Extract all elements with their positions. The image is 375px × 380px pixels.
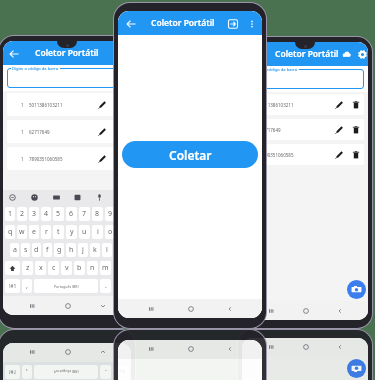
button[interactable]: m bbox=[100, 261, 111, 275]
button[interactable]: n bbox=[87, 261, 98, 275]
button[interactable]: . bbox=[100, 279, 111, 293]
button[interactable]: 1 bbox=[7, 93, 127, 116]
button[interactable]: 1 bbox=[246, 119, 364, 140]
button[interactable]: o bbox=[105, 225, 116, 239]
button[interactable]: Back bbox=[333, 341, 346, 354]
button[interactable]: Scan barcode bbox=[347, 359, 366, 378]
button[interactable]: Recent apps bbox=[25, 346, 38, 359]
button[interactable]: t bbox=[53, 225, 64, 239]
button[interactable]: Recent apps bbox=[144, 343, 157, 356]
button[interactable]: a bbox=[10, 243, 19, 257]
button[interactable] bbox=[7, 68, 127, 88]
button[interactable]: Recent apps bbox=[264, 341, 277, 354]
button[interactable]: 1 bbox=[246, 94, 364, 115]
button[interactable]: Scan barcode bbox=[347, 280, 366, 299]
button[interactable]: Back bbox=[6, 46, 21, 61]
button[interactable]: Delete bbox=[111, 97, 126, 112]
button[interactable]: y bbox=[66, 225, 77, 239]
button[interactable]: Delete bbox=[348, 122, 363, 137]
button[interactable]: Home bbox=[184, 343, 197, 356]
button[interactable]: 9 bbox=[105, 207, 116, 221]
button[interactable]: 4 bbox=[41, 207, 51, 221]
button[interactable]: d bbox=[32, 243, 41, 257]
button[interactable]: v bbox=[61, 261, 72, 275]
button[interactable]: Edit bbox=[331, 97, 346, 112]
button[interactable]: 2 bbox=[17, 207, 27, 221]
button[interactable]: ç bbox=[114, 243, 124, 257]
button[interactable]: f bbox=[43, 243, 52, 257]
button[interactable]: Coletar bbox=[122, 141, 258, 168]
button[interactable]: Delete bbox=[111, 124, 126, 139]
button[interactable]: Home bbox=[61, 346, 74, 359]
button[interactable]: e bbox=[29, 225, 39, 239]
button[interactable] bbox=[113, 365, 129, 379]
button[interactable]: j bbox=[78, 243, 88, 257]
button[interactable]: Back bbox=[333, 304, 346, 317]
button[interactable]: Back bbox=[223, 343, 236, 356]
button[interactable]: Add item bbox=[225, 16, 240, 31]
button[interactable]: Back bbox=[123, 16, 138, 31]
button[interactable]: Settings bbox=[356, 47, 368, 61]
button[interactable] bbox=[246, 69, 364, 89]
button[interactable]: !#1 bbox=[5, 365, 20, 379]
button[interactable]: u bbox=[79, 225, 90, 239]
button[interactable]: Home bbox=[299, 341, 312, 354]
button[interactable]: Hide keyboard bbox=[96, 346, 109, 359]
button[interactable]: Keyboard tool bbox=[94, 192, 105, 203]
button[interactable]: Edit bbox=[94, 124, 109, 139]
button[interactable]: l bbox=[102, 243, 112, 257]
button[interactable]: 7 bbox=[79, 207, 90, 221]
button[interactable]: Keyboard tool bbox=[7, 192, 18, 203]
button[interactable]: Keyboard tool bbox=[72, 192, 83, 203]
button[interactable]: Delete bbox=[348, 97, 363, 112]
button[interactable]: Upload bbox=[114, 45, 130, 61]
button[interactable]: 1 bbox=[7, 120, 127, 143]
button[interactable]: Edit bbox=[94, 97, 109, 112]
button[interactable]: More options bbox=[245, 17, 258, 30]
button[interactable]: Keyboard tool bbox=[29, 192, 40, 203]
button[interactable]: Home bbox=[61, 299, 74, 312]
button[interactable]: Edit bbox=[331, 122, 346, 137]
button[interactable]: 8 bbox=[92, 207, 103, 221]
button[interactable]: r bbox=[41, 225, 51, 239]
button[interactable]: b bbox=[74, 261, 85, 275]
button[interactable]: Keyboard tool bbox=[116, 192, 127, 203]
button[interactable]: Back bbox=[223, 302, 236, 315]
button[interactable]: Home bbox=[299, 304, 312, 317]
button[interactable]: Home bbox=[184, 302, 197, 315]
button[interactable]: Hide keyboard bbox=[96, 299, 109, 312]
button[interactable]: 1 bbox=[7, 147, 127, 170]
button[interactable]: Keyboard tool bbox=[51, 192, 62, 203]
button[interactable] bbox=[5, 261, 20, 275]
button[interactable] bbox=[113, 279, 129, 293]
button[interactable]: , bbox=[22, 279, 32, 293]
button[interactable]: Recent apps bbox=[144, 302, 157, 315]
button[interactable]: 1 bbox=[246, 144, 364, 165]
button[interactable]: g bbox=[54, 243, 64, 257]
button[interactable]: Recent apps bbox=[264, 304, 277, 317]
button[interactable]: 5 bbox=[53, 207, 64, 221]
button[interactable]: w bbox=[17, 225, 27, 239]
button[interactable]: z bbox=[22, 261, 33, 275]
button[interactable]: x bbox=[35, 261, 46, 275]
button[interactable]: 3 bbox=[29, 207, 39, 221]
button[interactable]: h bbox=[66, 243, 76, 257]
button[interactable]: Português (BR) bbox=[34, 279, 98, 293]
button[interactable]: c bbox=[48, 261, 59, 275]
button[interactable]: . bbox=[100, 365, 111, 379]
button[interactable]: Upload bbox=[339, 47, 353, 61]
button[interactable] bbox=[113, 261, 129, 275]
button[interactable]: 1 bbox=[5, 207, 15, 221]
button[interactable]: s bbox=[21, 243, 30, 257]
button[interactable]: , bbox=[22, 365, 32, 379]
button[interactable]: Português (BR) bbox=[34, 365, 98, 379]
button[interactable]: 6 bbox=[66, 207, 77, 221]
button[interactable]: Recent apps bbox=[25, 299, 38, 312]
button[interactable]: Delete bbox=[348, 147, 363, 162]
button[interactable]: q bbox=[5, 225, 15, 239]
button[interactable]: Delete bbox=[111, 151, 126, 166]
button[interactable]: Edit bbox=[94, 151, 109, 166]
button[interactable]: !#1 bbox=[5, 279, 20, 293]
